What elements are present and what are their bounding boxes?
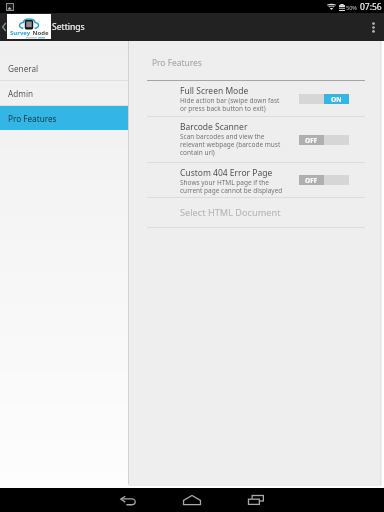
staticText: 50% bbox=[346, 4, 357, 11]
staticText: Shows your HTML page if the current page… bbox=[180, 178, 283, 195]
button[interactable]: Off bbox=[299, 135, 349, 145]
button[interactable]: Survey Node bbox=[7, 14, 51, 39]
staticText: General bbox=[8, 63, 39, 74]
staticText: ON bbox=[331, 95, 342, 104]
button[interactable]: On bbox=[299, 94, 349, 104]
button[interactable]: Custom 404 Error Page bbox=[129, 163, 382, 197]
button[interactable]: Off bbox=[299, 175, 349, 185]
staticText: Custom 404 Error Page bbox=[180, 167, 273, 179]
staticText: Admin bbox=[8, 88, 34, 99]
staticText: Pro Features bbox=[152, 57, 202, 68]
staticText: Select HTML Document bbox=[180, 206, 281, 219]
staticText: Node bbox=[31, 29, 49, 37]
button[interactable]: More options bbox=[362, 13, 384, 41]
button[interactable]: Select HTML Document bbox=[129, 198, 382, 227]
staticText: Hide action bar (swipe down fast or pres… bbox=[180, 96, 280, 113]
button[interactable]: Home bbox=[172, 488, 212, 512]
button[interactable]: General bbox=[0, 56, 128, 80]
button[interactable]: Barcode Scanner bbox=[129, 117, 382, 162]
staticText: Pro Features bbox=[8, 113, 57, 124]
button[interactable]: Full Screen Mode bbox=[129, 81, 382, 116]
button[interactable]: Pro Features bbox=[0, 106, 128, 130]
staticText: Survey bbox=[10, 29, 31, 37]
button[interactable]: Back bbox=[108, 488, 148, 512]
staticText: OFF bbox=[305, 136, 318, 145]
staticText: OFF bbox=[305, 176, 318, 185]
staticText: Full Screen Mode bbox=[180, 85, 249, 97]
button[interactable]: Navigate up bbox=[0, 13, 7, 41]
button[interactable]: Recent apps bbox=[236, 488, 276, 512]
staticText: Settings bbox=[52, 21, 85, 33]
staticText: 07:56 bbox=[360, 1, 382, 13]
button[interactable]: Admin bbox=[0, 81, 128, 105]
staticText: Scan barcodes and view the relevant webp… bbox=[180, 132, 281, 157]
staticText: Barcode Scanner bbox=[180, 121, 248, 133]
